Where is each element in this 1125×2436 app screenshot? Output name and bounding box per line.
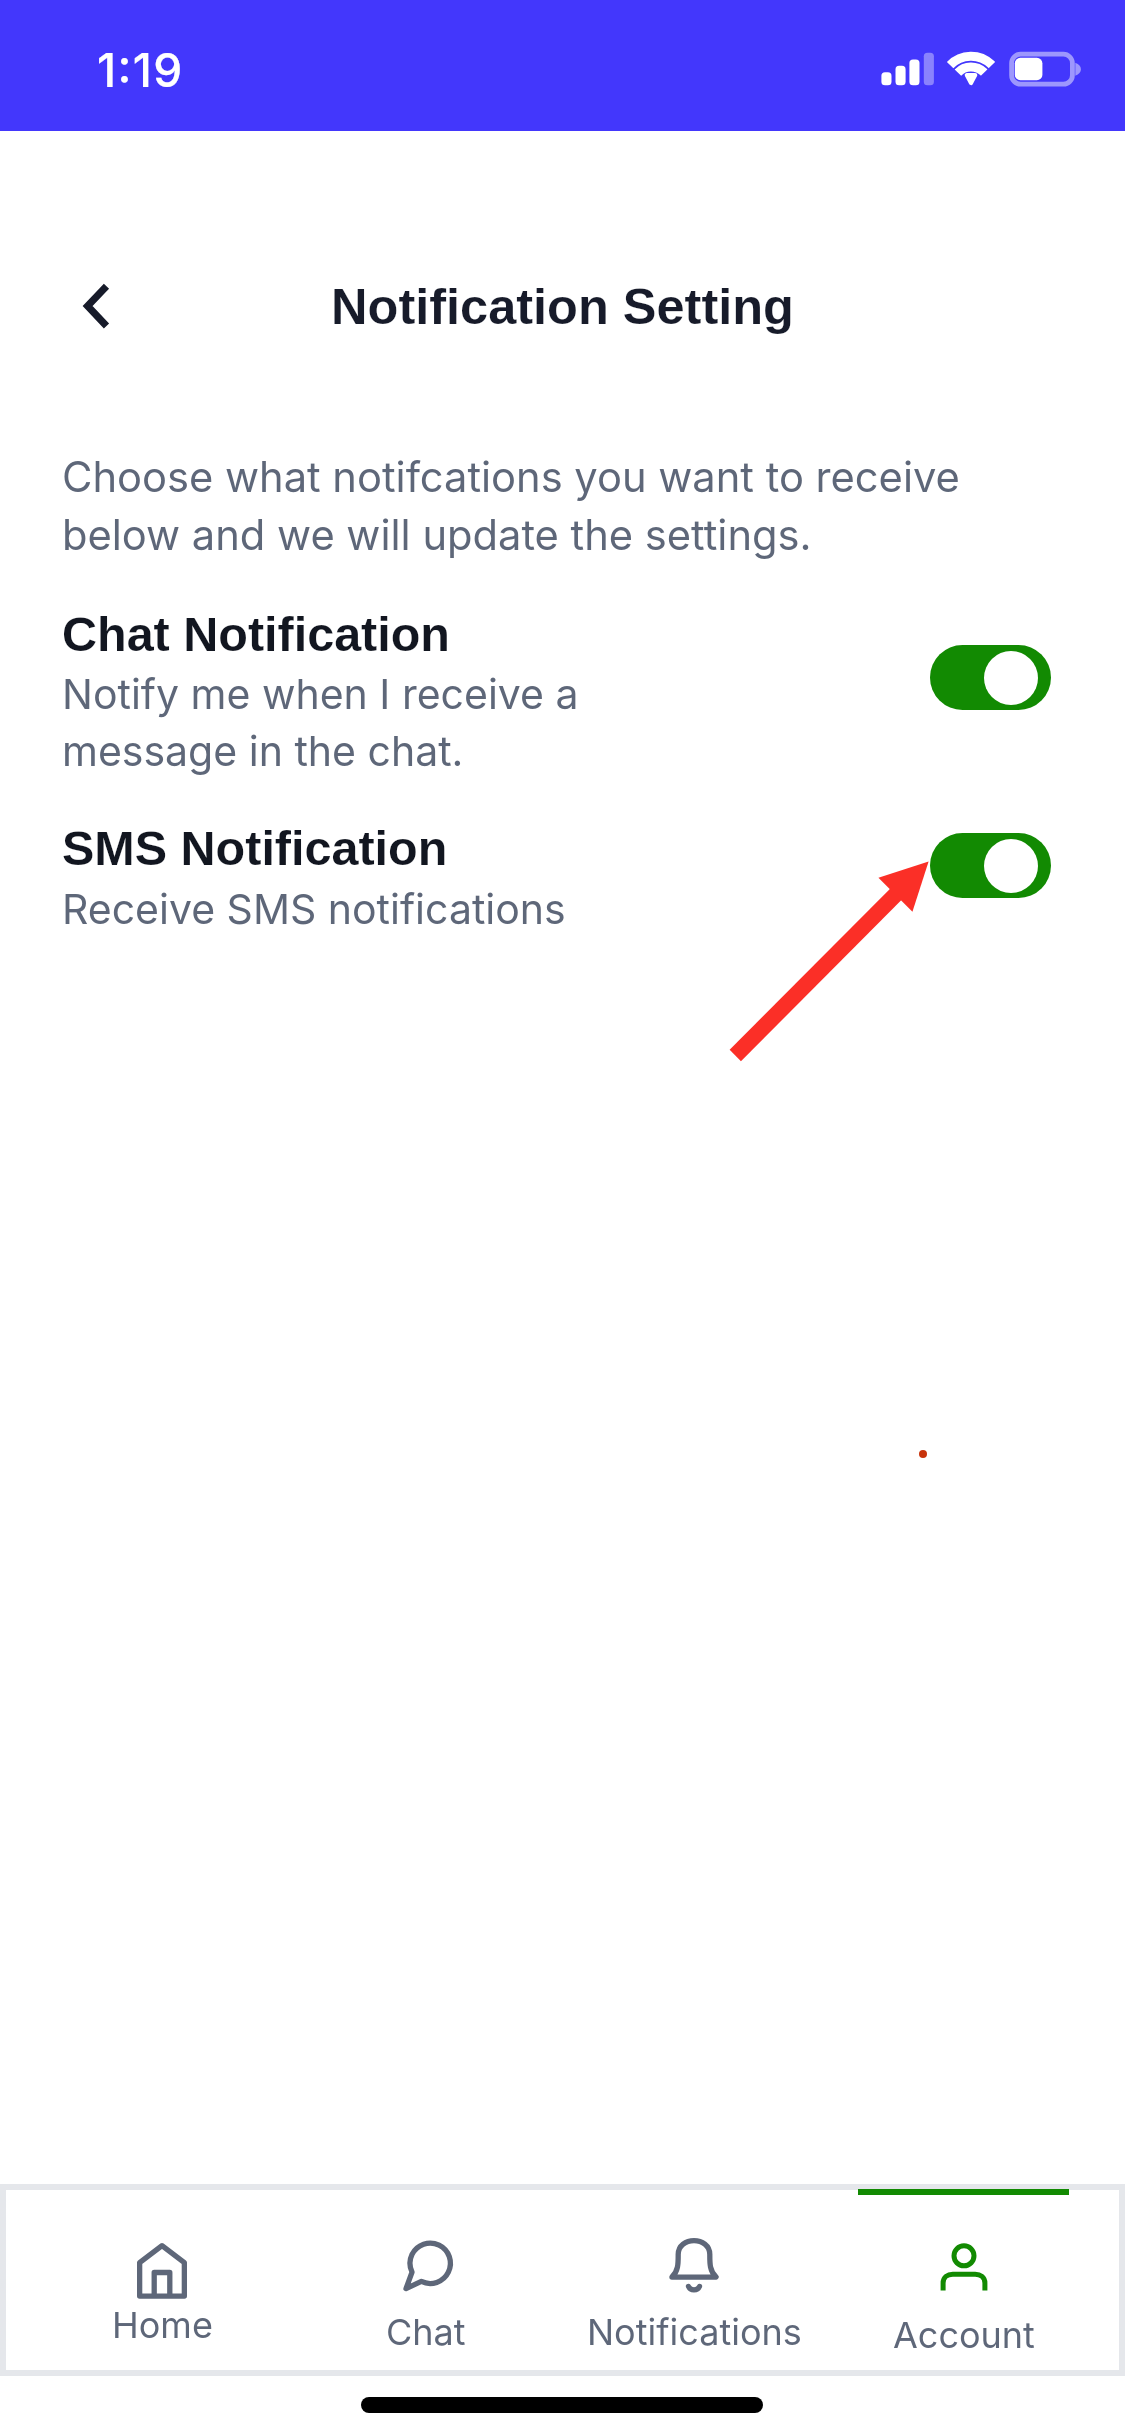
button[interactable]: Toggle on [930,645,1051,710]
button[interactable]: Toggle on [930,833,1051,898]
staticText: Receive SMS notifications [62,884,566,934]
staticText: Choose what notifcations you want to rec… [62,452,1012,560]
staticText: Notification Setting [0,278,1125,334]
button[interactable]: Home [30,2190,294,2370]
staticText: Chat [386,2310,466,2354]
staticText: Account [893,2313,1035,2357]
button[interactable]: Chat [294,2190,558,2370]
staticText: 1:19 [97,42,184,98]
button[interactable]: Account [832,2190,1096,2370]
button[interactable]: Notifications [562,2190,826,2370]
staticText: Chat Notification [62,607,450,661]
staticText: Notifications [587,2310,802,2354]
button[interactable]: Chat Notification [0,590,1125,786]
button[interactable]: Back [54,264,138,348]
button[interactable]: SMS Notification [0,800,1125,940]
staticText: Notify me when I receive a message in th… [62,669,579,776]
staticText: Home [112,2303,213,2347]
staticText: SMS Notification [62,821,448,875]
